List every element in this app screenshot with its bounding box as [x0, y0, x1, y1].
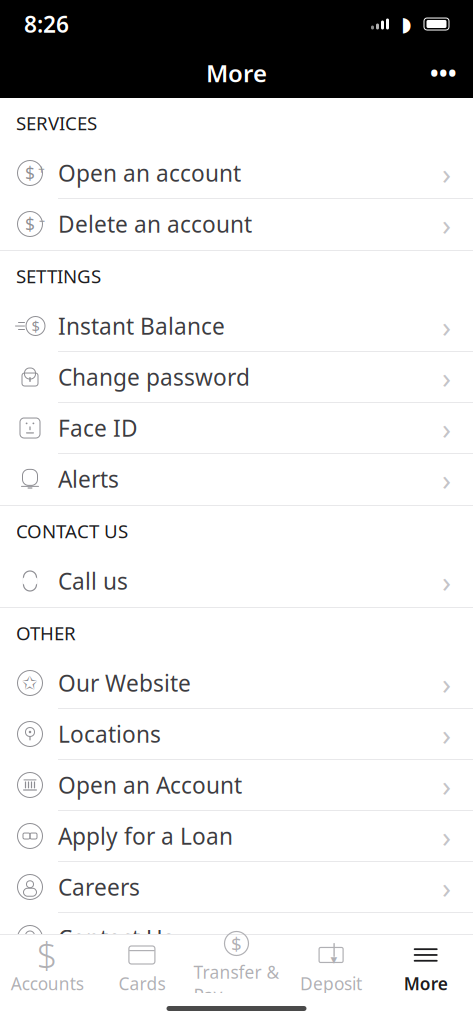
button[interactable]: ▾ [284, 933, 378, 995]
staticText: Instant Balance [58, 311, 225, 341]
button[interactable]: Open an Account [0, 760, 473, 811]
staticText: $ [231, 931, 242, 956]
staticText: › [442, 204, 451, 243]
staticText: Delete an account [58, 209, 252, 239]
staticText: ✩ [22, 672, 38, 694]
staticText: SERVICES [16, 111, 97, 135]
staticText: Locations [58, 719, 161, 749]
staticText: › [442, 816, 451, 855]
button[interactable]: $ [0, 933, 95, 995]
staticText: › [442, 408, 451, 447]
button[interactable]: Call us [0, 556, 473, 607]
staticText: › [442, 153, 451, 192]
staticText: Face ID [58, 413, 138, 443]
staticText: Transfer & Pay [193, 960, 279, 1006]
staticText: › [442, 306, 451, 345]
staticText: › [442, 561, 451, 600]
button[interactable]: $ [0, 199, 473, 250]
staticText: › [442, 459, 451, 498]
staticText: $ [31, 316, 39, 336]
staticText: $ [25, 161, 35, 184]
staticText: › [442, 765, 451, 804]
button[interactable]: Locations [0, 709, 473, 760]
staticText: Change password [58, 362, 250, 392]
button[interactable]: More [378, 933, 473, 995]
button[interactable]: $ [0, 148, 473, 199]
staticText: SETTINGS [16, 264, 101, 288]
button[interactable]: Alerts [0, 454, 473, 505]
staticText: More [404, 972, 448, 995]
staticText: $ [25, 212, 35, 235]
staticText: OTHER [16, 621, 76, 645]
staticText: Call us [58, 566, 128, 596]
staticText: ▾ [331, 952, 338, 967]
staticText: CONTACT US [16, 519, 128, 543]
staticText: Cards [118, 972, 165, 995]
staticText: Our Website [58, 668, 191, 698]
staticText: ◗ [401, 13, 412, 35]
staticText: › [442, 918, 451, 957]
staticText: › [442, 663, 451, 702]
staticText: › [442, 714, 451, 753]
staticText: Accounts [11, 972, 84, 995]
button[interactable]: ✩ [0, 658, 473, 709]
staticText: 8:26 [24, 9, 69, 39]
staticText: Open an account [58, 158, 241, 188]
staticText: Careers [58, 872, 140, 902]
button[interactable]: Apply for a Loan [0, 811, 473, 862]
button[interactable]: Change password [0, 352, 473, 403]
button[interactable]: Face ID [0, 403, 473, 454]
staticText: Open an Account [58, 770, 242, 800]
staticText: › [442, 867, 451, 906]
staticText: › [442, 357, 451, 396]
button[interactable]: Careers [0, 862, 473, 913]
staticText: Alerts [58, 464, 119, 494]
staticText: + [38, 161, 45, 177]
button[interactable]: More options [414, 51, 473, 95]
button[interactable]: Cards [95, 933, 189, 995]
staticText: – [39, 212, 45, 228]
staticText: Contact Us [58, 923, 174, 953]
button[interactable]: $ [189, 921, 284, 1006]
staticText: Apply for a Loan [58, 821, 233, 851]
button[interactable]: $ [0, 301, 473, 352]
button[interactable]: Contact Us [0, 913, 473, 964]
staticText: ••• [430, 58, 457, 88]
staticText: $ [37, 931, 58, 979]
staticText: Deposit [300, 972, 362, 995]
staticText: More [206, 57, 267, 89]
